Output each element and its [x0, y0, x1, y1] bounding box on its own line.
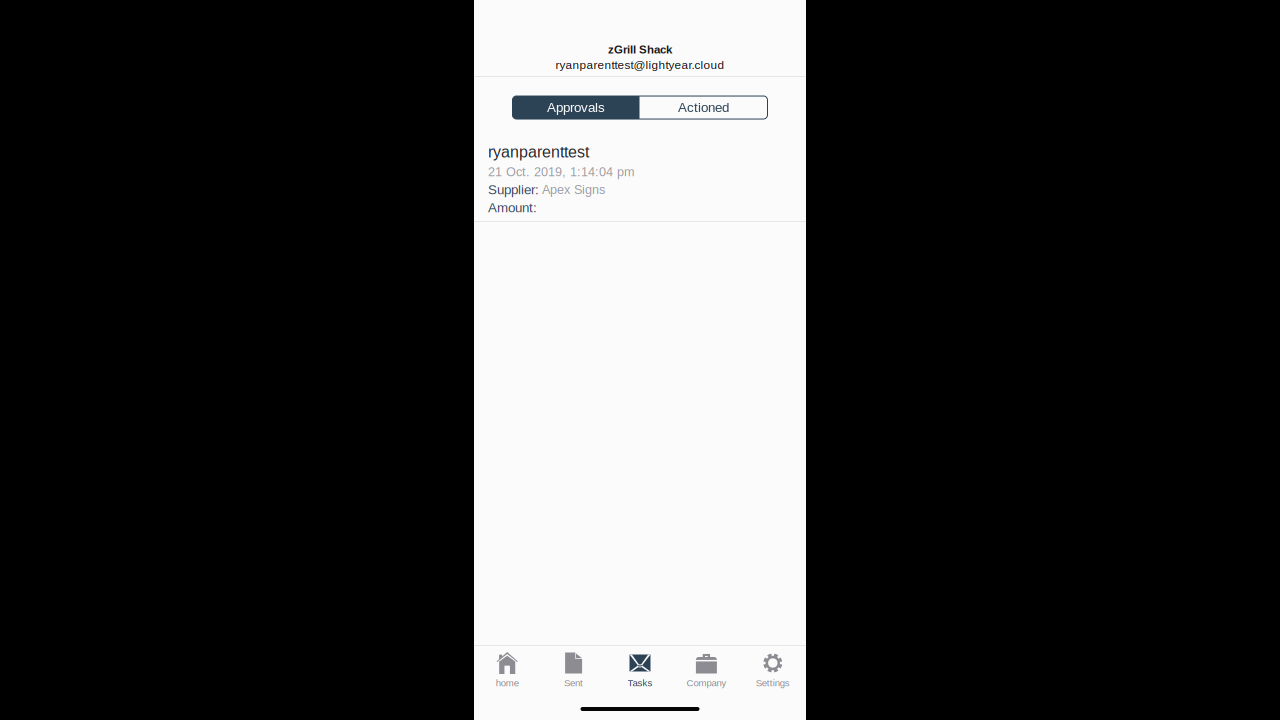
staticText: 21 Oct. 2019, 1:14:04 pm: [488, 165, 635, 179]
staticText: ryanparenttest@lightyear.cloud: [555, 58, 724, 71]
staticText: Settings: [756, 678, 790, 688]
button[interactable]: Company: [673, 652, 740, 688]
staticText: Company: [686, 678, 726, 688]
button[interactable]: Tasks: [607, 652, 673, 688]
staticText: Supplier:: [488, 182, 539, 197]
button[interactable]: Sent: [540, 652, 607, 688]
button[interactable]: home: [474, 652, 540, 688]
staticText: home: [496, 678, 519, 688]
staticText: Tasks: [627, 678, 652, 688]
staticText: zGrill Shack: [608, 43, 672, 56]
staticText: Apex Signs: [542, 182, 605, 197]
staticText: Sent: [564, 678, 583, 688]
button[interactable]: ryanparenttest: [474, 119, 806, 221]
staticText: Amount:: [488, 200, 537, 215]
staticText: Actioned: [678, 100, 729, 115]
staticText: ryanparenttest: [488, 143, 589, 161]
staticText: Approvals: [547, 100, 605, 115]
button[interactable]: Actioned: [639, 96, 767, 119]
button[interactable]: Settings: [740, 652, 806, 688]
button[interactable]: Approvals: [512, 96, 639, 119]
